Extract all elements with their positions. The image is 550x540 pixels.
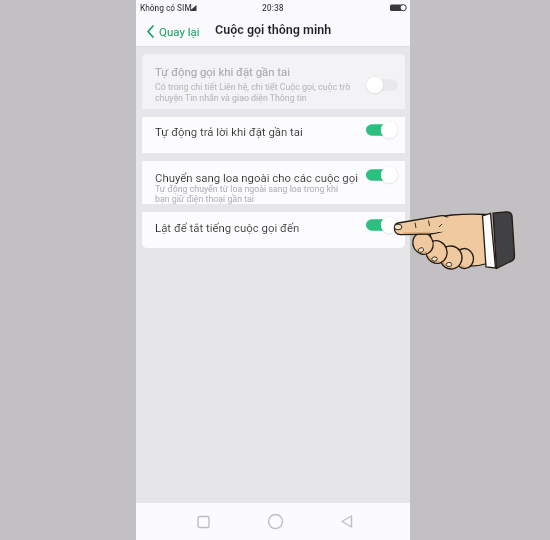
staticText: Cuộc gọi thông minh xyxy=(215,22,332,37)
staticText: Tự động trả lời khi đặt gần tai xyxy=(155,125,303,138)
button[interactable] xyxy=(366,76,398,94)
button[interactable] xyxy=(142,212,405,248)
button[interactable] xyxy=(336,510,359,533)
button[interactable] xyxy=(366,121,398,139)
button[interactable] xyxy=(142,117,405,153)
staticText: 20:38 xyxy=(262,3,284,13)
staticText: bạn giữ điện thoại gần tai xyxy=(155,194,254,204)
staticText: Không có SIM xyxy=(140,3,192,13)
staticText: Chuyển sang loa ngoài cho các cuộc gọi xyxy=(155,171,358,184)
button[interactable] xyxy=(192,510,215,533)
button[interactable] xyxy=(142,161,405,204)
staticText: Tự động chuyển từ loa ngoài sang loa tro… xyxy=(155,184,339,194)
staticText: Quay lại xyxy=(159,25,200,38)
staticText: Tự động gọi khi đặt gần tai xyxy=(155,65,291,78)
button[interactable] xyxy=(264,510,287,533)
staticText: Lật để tắt tiếng cuộc gọi đến xyxy=(155,221,300,234)
button[interactable]: Quay lại xyxy=(142,18,204,44)
button[interactable] xyxy=(142,54,405,109)
button[interactable] xyxy=(366,166,398,184)
staticText: chuyện Tin nhắn và giao diện Thông tin xyxy=(155,93,307,103)
staticText: Có trong chi tiết Liên hệ, chi tiết Cuộc… xyxy=(155,82,351,92)
button[interactable] xyxy=(366,216,398,234)
